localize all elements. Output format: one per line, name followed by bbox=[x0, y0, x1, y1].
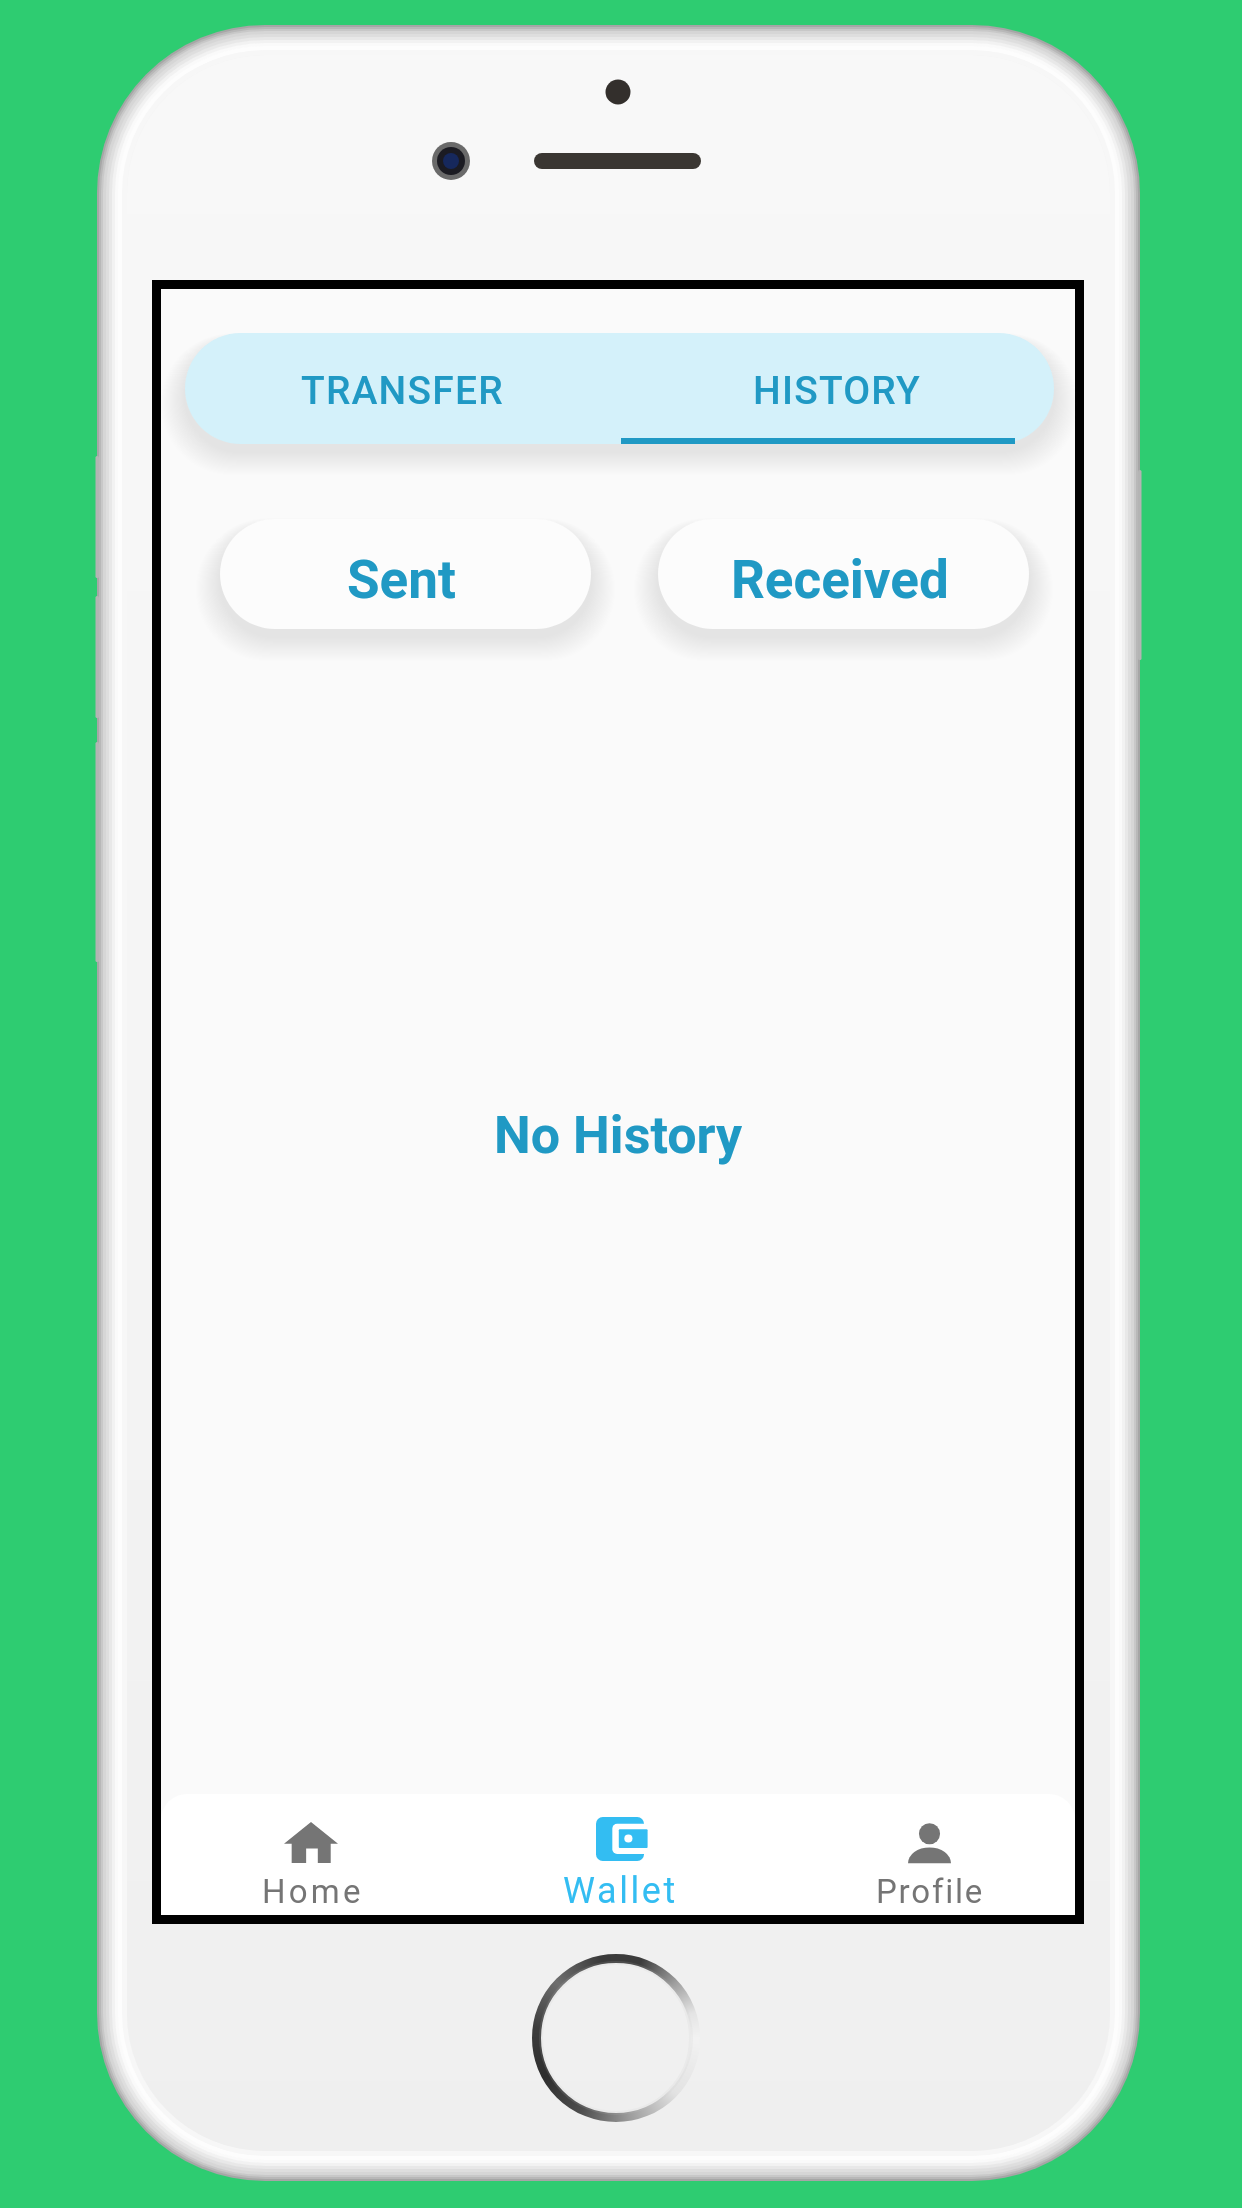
staticText: Sent bbox=[347, 549, 456, 611]
staticText: Wallet bbox=[563, 1870, 678, 1912]
staticText: Received bbox=[731, 549, 949, 611]
button[interactable]: HISTORY bbox=[619, 333, 1054, 444]
button[interactable]: Profile bbox=[770, 1794, 1075, 1915]
staticText: HISTORY bbox=[753, 368, 921, 414]
button[interactable]: Wallet bbox=[465, 1794, 770, 1915]
staticText: Home bbox=[262, 1872, 364, 1911]
button[interactable]: TRANSFER bbox=[185, 333, 619, 444]
staticText: No History bbox=[494, 1105, 743, 1166]
staticText: Profile bbox=[876, 1872, 985, 1911]
button[interactable]: Home bbox=[161, 1794, 465, 1915]
button[interactable]: Received bbox=[658, 519, 1029, 629]
staticText: TRANSFER bbox=[301, 368, 504, 414]
button[interactable]: Sent bbox=[220, 519, 591, 629]
